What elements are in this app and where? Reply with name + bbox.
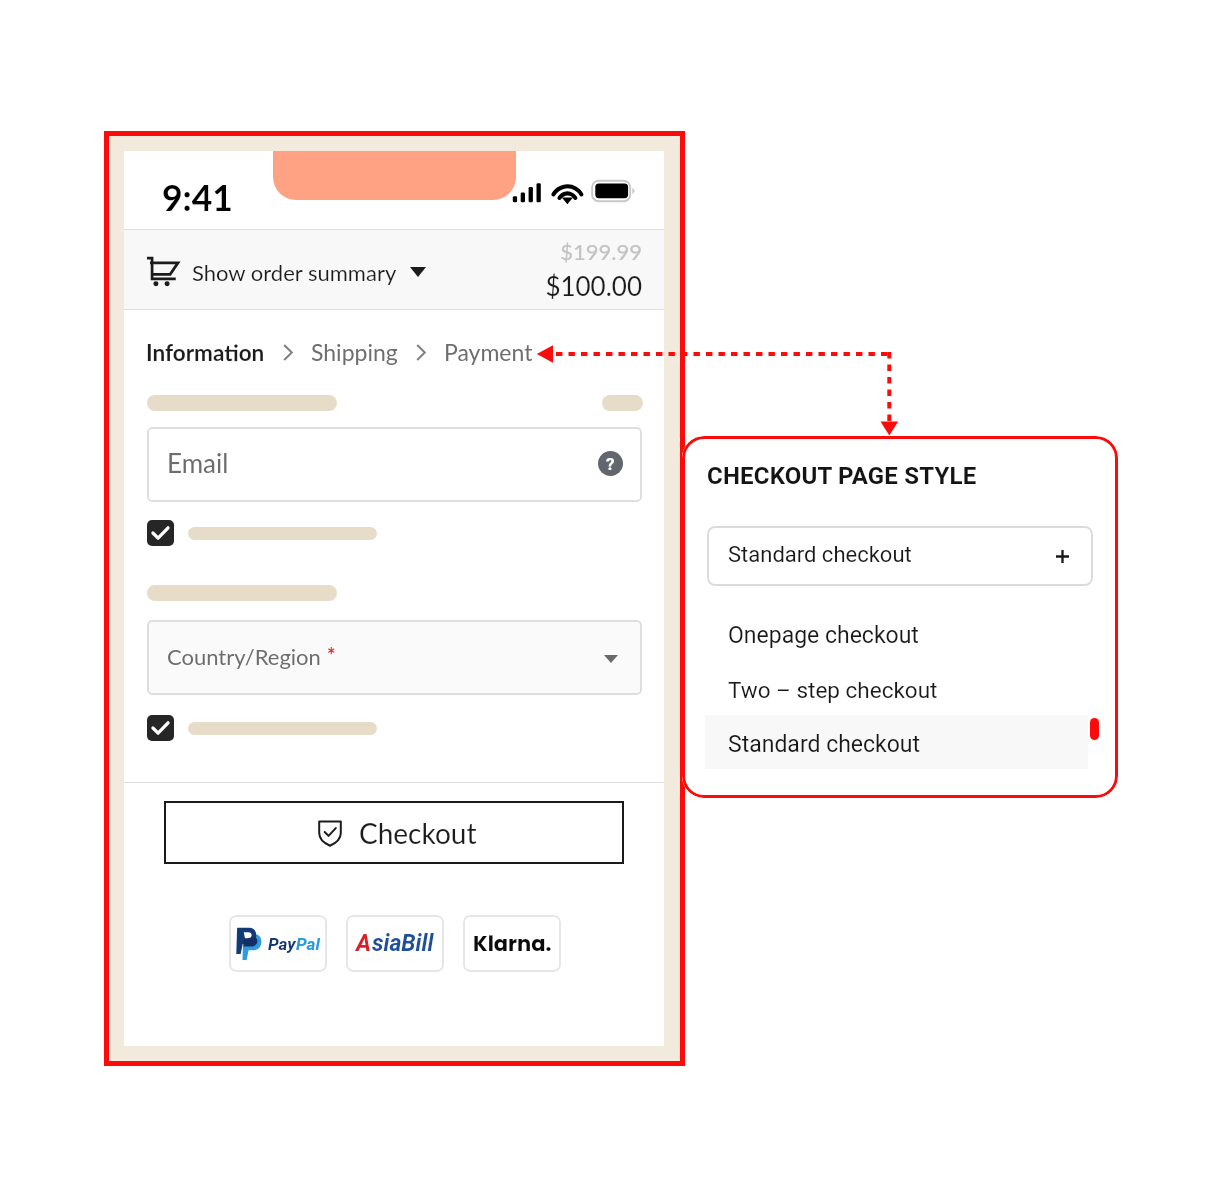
staticText: Email	[167, 447, 229, 478]
staticText: Onepage checkout	[728, 622, 919, 649]
button[interactable]: Checkout	[164, 801, 624, 864]
button[interactable]: Standard checkout	[705, 715, 1088, 769]
button[interactable]: AsiaBill	[346, 915, 444, 972]
button[interactable]: Checkbox	[147, 520, 174, 546]
staticText: *	[327, 643, 336, 667]
button[interactable]: Country/Region	[147, 620, 642, 695]
button[interactable]: PayPal	[229, 915, 327, 972]
button[interactable]: Klarna	[463, 915, 561, 972]
staticText: Klarna.	[473, 929, 552, 958]
staticText: 9:41	[162, 176, 233, 219]
other: Help	[598, 451, 623, 476]
staticText: Pal	[296, 934, 320, 954]
staticText: Two – step checkout	[728, 677, 938, 703]
staticText: A	[356, 930, 372, 957]
staticText: siaBill	[372, 930, 434, 957]
other: Expand	[1056, 550, 1069, 563]
staticText: ?	[606, 454, 615, 474]
staticText: Information	[146, 339, 265, 366]
button[interactable]: Standard checkout	[707, 526, 1093, 586]
staticText: CHECKOUT PAGE STYLE	[707, 462, 977, 490]
staticText: Checkout	[359, 816, 477, 850]
staticText: Shipping	[311, 338, 398, 366]
staticText: $199.99	[560, 238, 642, 264]
staticText: Pay	[268, 934, 296, 954]
staticText: Standard checkout	[728, 731, 921, 758]
staticText: Country/Region	[167, 643, 321, 669]
staticText: Show order summary	[192, 259, 397, 285]
staticText: Standard checkout	[728, 542, 912, 568]
staticText: Payment	[444, 338, 533, 366]
button[interactable]: Email	[147, 427, 642, 502]
button[interactable]: Show order summary	[124, 229, 664, 310]
staticText: $100.00	[545, 270, 642, 301]
button[interactable]: Checkbox	[147, 715, 174, 741]
